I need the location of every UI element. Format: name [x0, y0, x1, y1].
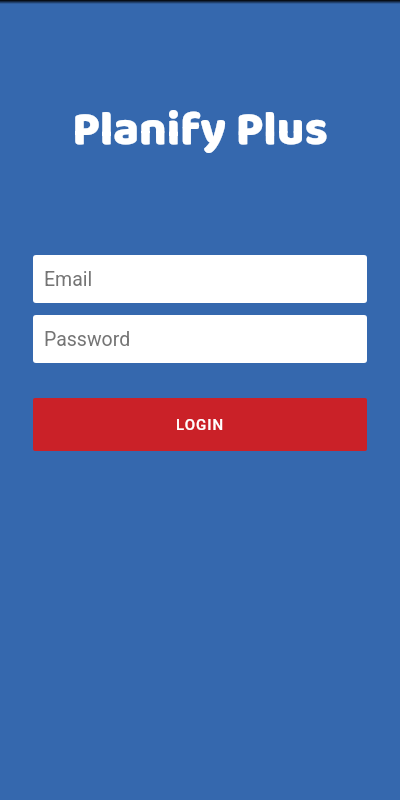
staticText: Password: [44, 328, 131, 351]
button[interactable]: LOGIN: [33, 398, 367, 451]
staticText: Planify Plus: [0, 93, 400, 169]
button[interactable]: Email: [33, 255, 367, 303]
button[interactable]: Password: [33, 315, 367, 363]
staticText: Email: [44, 268, 93, 291]
staticText: LOGIN: [176, 416, 225, 434]
